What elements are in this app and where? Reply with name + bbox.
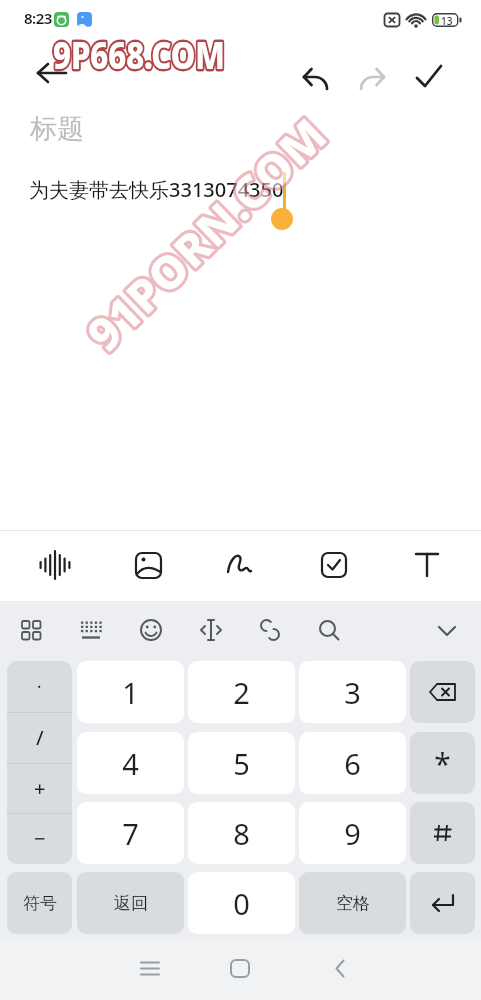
button[interactable]: 4 [77, 732, 184, 794]
button[interactable] [298, 58, 332, 92]
button[interactable] [410, 661, 475, 723]
button[interactable]: · [7, 661, 72, 712]
button[interactable] [410, 872, 475, 934]
button[interactable] [356, 58, 390, 92]
button[interactable]: 5 [188, 732, 295, 794]
staticText: 返回 [114, 893, 148, 914]
button[interactable] [221, 950, 259, 988]
staticText: 91PORN.COM [73, 103, 340, 363]
button[interactable] [321, 950, 359, 988]
button[interactable] [252, 612, 288, 648]
button[interactable] [131, 950, 169, 988]
button[interactable] [133, 612, 169, 648]
button[interactable]: / [7, 712, 72, 763]
button[interactable] [311, 612, 347, 648]
staticText: 91PORN.COM [73, 103, 340, 363]
staticText: 13 [441, 14, 453, 28]
button[interactable] [405, 543, 449, 587]
staticText: * [434, 743, 451, 784]
staticText: / [36, 724, 44, 751]
staticText: 9 [344, 814, 361, 853]
staticText: 标题 [30, 112, 84, 146]
button[interactable] [26, 56, 70, 90]
button[interactable]: 0 [188, 872, 295, 934]
staticText: 符号 [23, 893, 57, 914]
button[interactable]: 3 [299, 661, 406, 723]
staticText: 4 [122, 744, 139, 783]
button[interactable] [13, 612, 49, 648]
button[interactable]: * [410, 732, 475, 794]
button[interactable]: 9 [299, 802, 406, 864]
button[interactable] [410, 802, 475, 864]
button[interactable] [126, 543, 170, 587]
button[interactable]: 2 [188, 661, 295, 723]
button[interactable] [73, 612, 109, 648]
staticText: 8:23 [24, 8, 52, 28]
staticText: 9P668.COM [53, 28, 225, 80]
button[interactable] [312, 543, 356, 587]
staticText: 1 [122, 673, 139, 712]
staticText: · [37, 676, 42, 698]
staticText: 5 [233, 744, 250, 783]
button[interactable]: 6 [299, 732, 406, 794]
button[interactable]: 返回 [77, 872, 184, 934]
button[interactable]: 8 [188, 802, 295, 864]
staticText: 8 [233, 814, 250, 853]
button[interactable]: 空格 [299, 872, 406, 934]
button[interactable]: 符号 [7, 872, 72, 934]
button[interactable]: − [7, 813, 72, 864]
staticText: 为夫妻带去快乐3313074350 [29, 176, 284, 203]
staticText: 0 [233, 884, 250, 923]
staticText: − [34, 825, 46, 852]
button[interactable] [33, 543, 77, 587]
button[interactable] [193, 612, 229, 648]
button[interactable]: + [7, 763, 72, 814]
staticText: 9P668.COM [53, 28, 225, 80]
staticText: 空格 [336, 893, 370, 914]
staticText: 7 [122, 814, 139, 853]
staticText: + [34, 775, 46, 802]
button[interactable] [429, 612, 465, 648]
button[interactable] [219, 543, 263, 587]
button[interactable] [410, 58, 448, 92]
staticText: 6 [344, 744, 361, 783]
staticText: 3 [344, 673, 361, 712]
button[interactable]: 1 [77, 661, 184, 723]
button[interactable]: 7 [77, 802, 184, 864]
staticText: 2 [233, 673, 250, 712]
